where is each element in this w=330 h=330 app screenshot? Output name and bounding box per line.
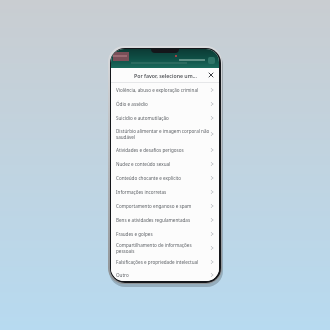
staticText: Atividades e desafios perigosos: [116, 147, 210, 153]
button[interactable]: Violência, abuso e exploração criminal: [111, 83, 219, 97]
staticText: Ódio e assédio: [116, 101, 210, 107]
button[interactable]: Bens e atividades regulamentadas: [111, 213, 219, 227]
button[interactable]: Outro: [111, 269, 219, 281]
staticText: Bens e atividades regulamentadas: [116, 217, 210, 223]
staticText: Distúrbio alimentar e imagem corporal nã…: [116, 128, 210, 140]
staticText: Fraudes e golpes: [116, 231, 210, 237]
staticText: Nudez e conteúdo sexual: [116, 161, 210, 167]
button[interactable]: Compartilhamento de informações pessoais: [111, 241, 219, 255]
button[interactable]: Informações incorretas: [111, 185, 219, 199]
button[interactable]: Distúrbio alimentar e imagem corporal nã…: [111, 125, 219, 143]
button[interactable]: Ódio e assédio: [111, 97, 219, 111]
button[interactable]: Fechar: [207, 71, 215, 79]
button[interactable]: Falsificações e propriedade intelectual: [111, 255, 219, 269]
staticText: Conteúdo chocante e explícito: [116, 175, 210, 181]
staticText: Suicídio e automutilação: [116, 115, 210, 121]
button[interactable]: Nudez e conteúdo sexual: [111, 157, 219, 171]
button[interactable]: Fraudes e golpes: [111, 227, 219, 241]
staticText: Informações incorretas: [116, 189, 210, 195]
button[interactable]: Suicídio e automutilação: [111, 111, 219, 125]
staticText: Violência, abuso e exploração criminal: [116, 87, 210, 93]
staticText: Por favor, selecione um...: [134, 72, 197, 79]
staticText: Compartilhamento de informações pessoais: [116, 242, 210, 254]
staticText: Comportamento enganoso e spam: [116, 203, 210, 209]
button[interactable]: Conteúdo chocante e explícito: [111, 171, 219, 185]
button[interactable]: Atividades e desafios perigosos: [111, 143, 219, 157]
button[interactable]: Comportamento enganoso e spam: [111, 199, 219, 213]
staticText: Outro: [116, 272, 210, 278]
staticText: Falsificações e propriedade intelectual: [116, 259, 210, 265]
